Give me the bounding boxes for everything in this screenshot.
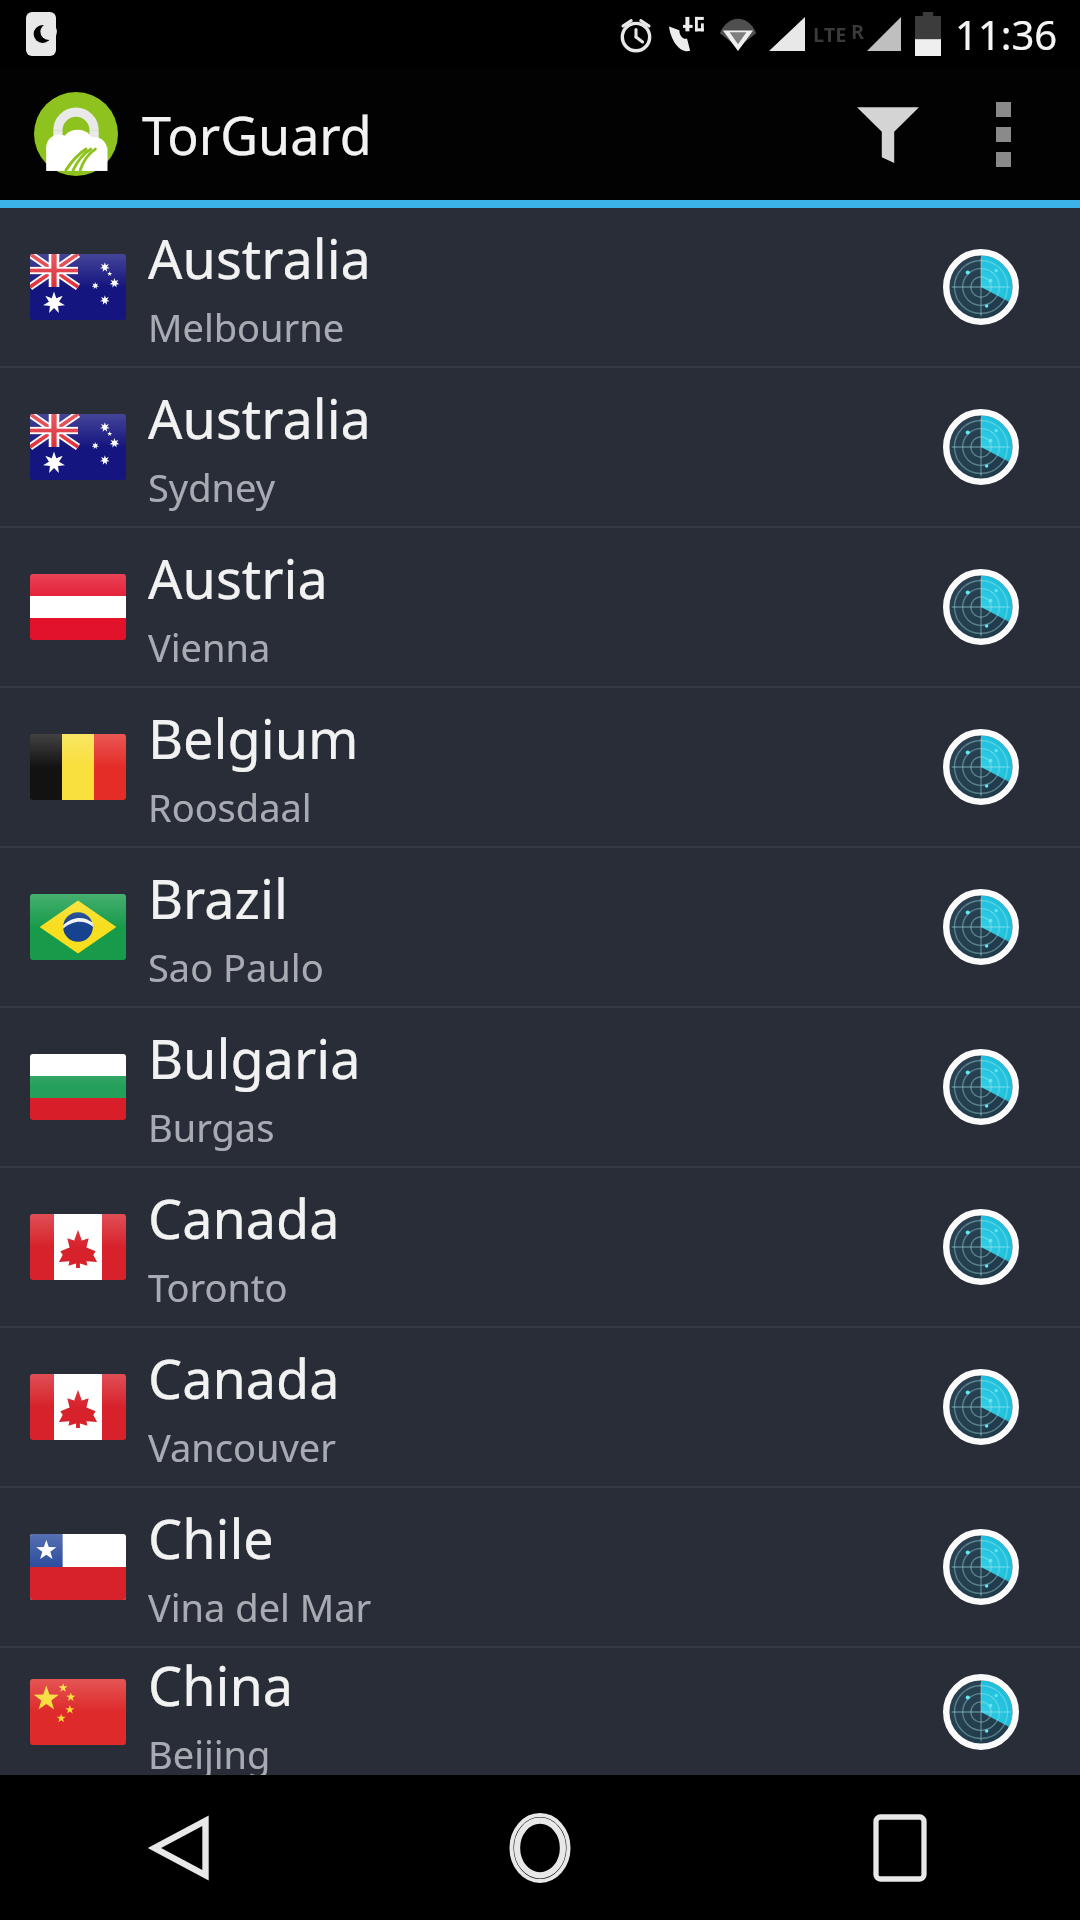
button[interactable]: Ping China Beijing — [906, 1648, 1056, 1775]
staticText: Melbourne — [148, 301, 345, 353]
staticText: Chile — [148, 1501, 274, 1575]
button[interactable]: Canada — [0, 1328, 1080, 1486]
staticText: Austria — [148, 541, 328, 615]
button[interactable]: Canada — [0, 1168, 1080, 1326]
button[interactable]: Ping Bulgaria Burgas — [906, 1008, 1056, 1166]
button[interactable]: Belgium — [0, 688, 1080, 846]
staticText: Sydney — [148, 461, 276, 513]
button[interactable]: Back — [0, 1775, 360, 1920]
staticText: Canada — [148, 1341, 340, 1415]
button[interactable]: China — [0, 1648, 1080, 1775]
button[interactable]: Australia — [0, 368, 1080, 526]
staticText: 11:36 — [955, 7, 1058, 61]
button[interactable]: Ping Canada Vancouver — [906, 1328, 1056, 1486]
staticText: Belgium — [148, 701, 359, 775]
button[interactable]: Ping Austria Vienna — [906, 528, 1056, 686]
button[interactable]: Home — [360, 1775, 720, 1920]
staticText: LTE — [813, 21, 847, 48]
staticText: Toronto — [148, 1261, 288, 1313]
button[interactable]: Ping Canada Toronto — [906, 1168, 1056, 1326]
button[interactable]: Ping Chile Vina del Mar — [906, 1488, 1056, 1646]
staticText: Roosdaal — [148, 781, 312, 833]
button[interactable]: Ping Belgium Roosdaal — [906, 688, 1056, 846]
button[interactable]: Ping Brazil Sao Paulo — [906, 848, 1056, 1006]
button[interactable]: Australia — [0, 208, 1080, 366]
staticText: Bulgaria — [148, 1021, 361, 1095]
button[interactable]: Austria — [0, 528, 1080, 686]
staticText: Beijing — [148, 1728, 271, 1775]
button[interactable]: Recent apps — [720, 1775, 1080, 1920]
staticText: Burgas — [148, 1101, 275, 1153]
button[interactable]: Brazil — [0, 848, 1080, 1006]
button[interactable]: Ping Australia Sydney — [906, 368, 1056, 526]
button[interactable]: Chile — [0, 1488, 1080, 1646]
staticText: R — [851, 18, 865, 45]
button[interactable]: Bulgaria — [0, 1008, 1080, 1166]
button[interactable]: Ping Australia Melbourne — [906, 208, 1056, 366]
staticText: Brazil — [148, 861, 288, 935]
staticText: TorGuard — [142, 99, 372, 170]
staticText: Australia — [148, 221, 371, 295]
staticText: Sao Paulo — [148, 941, 324, 993]
staticText: China — [148, 1648, 294, 1722]
staticText: Vienna — [148, 621, 271, 673]
staticText: Canada — [148, 1181, 340, 1255]
button[interactable]: Filter — [828, 68, 948, 200]
staticText: Vina del Mar — [148, 1581, 372, 1633]
staticText: Australia — [148, 381, 371, 455]
staticText: Vancouver — [148, 1421, 336, 1473]
button[interactable]: More options — [948, 68, 1058, 200]
